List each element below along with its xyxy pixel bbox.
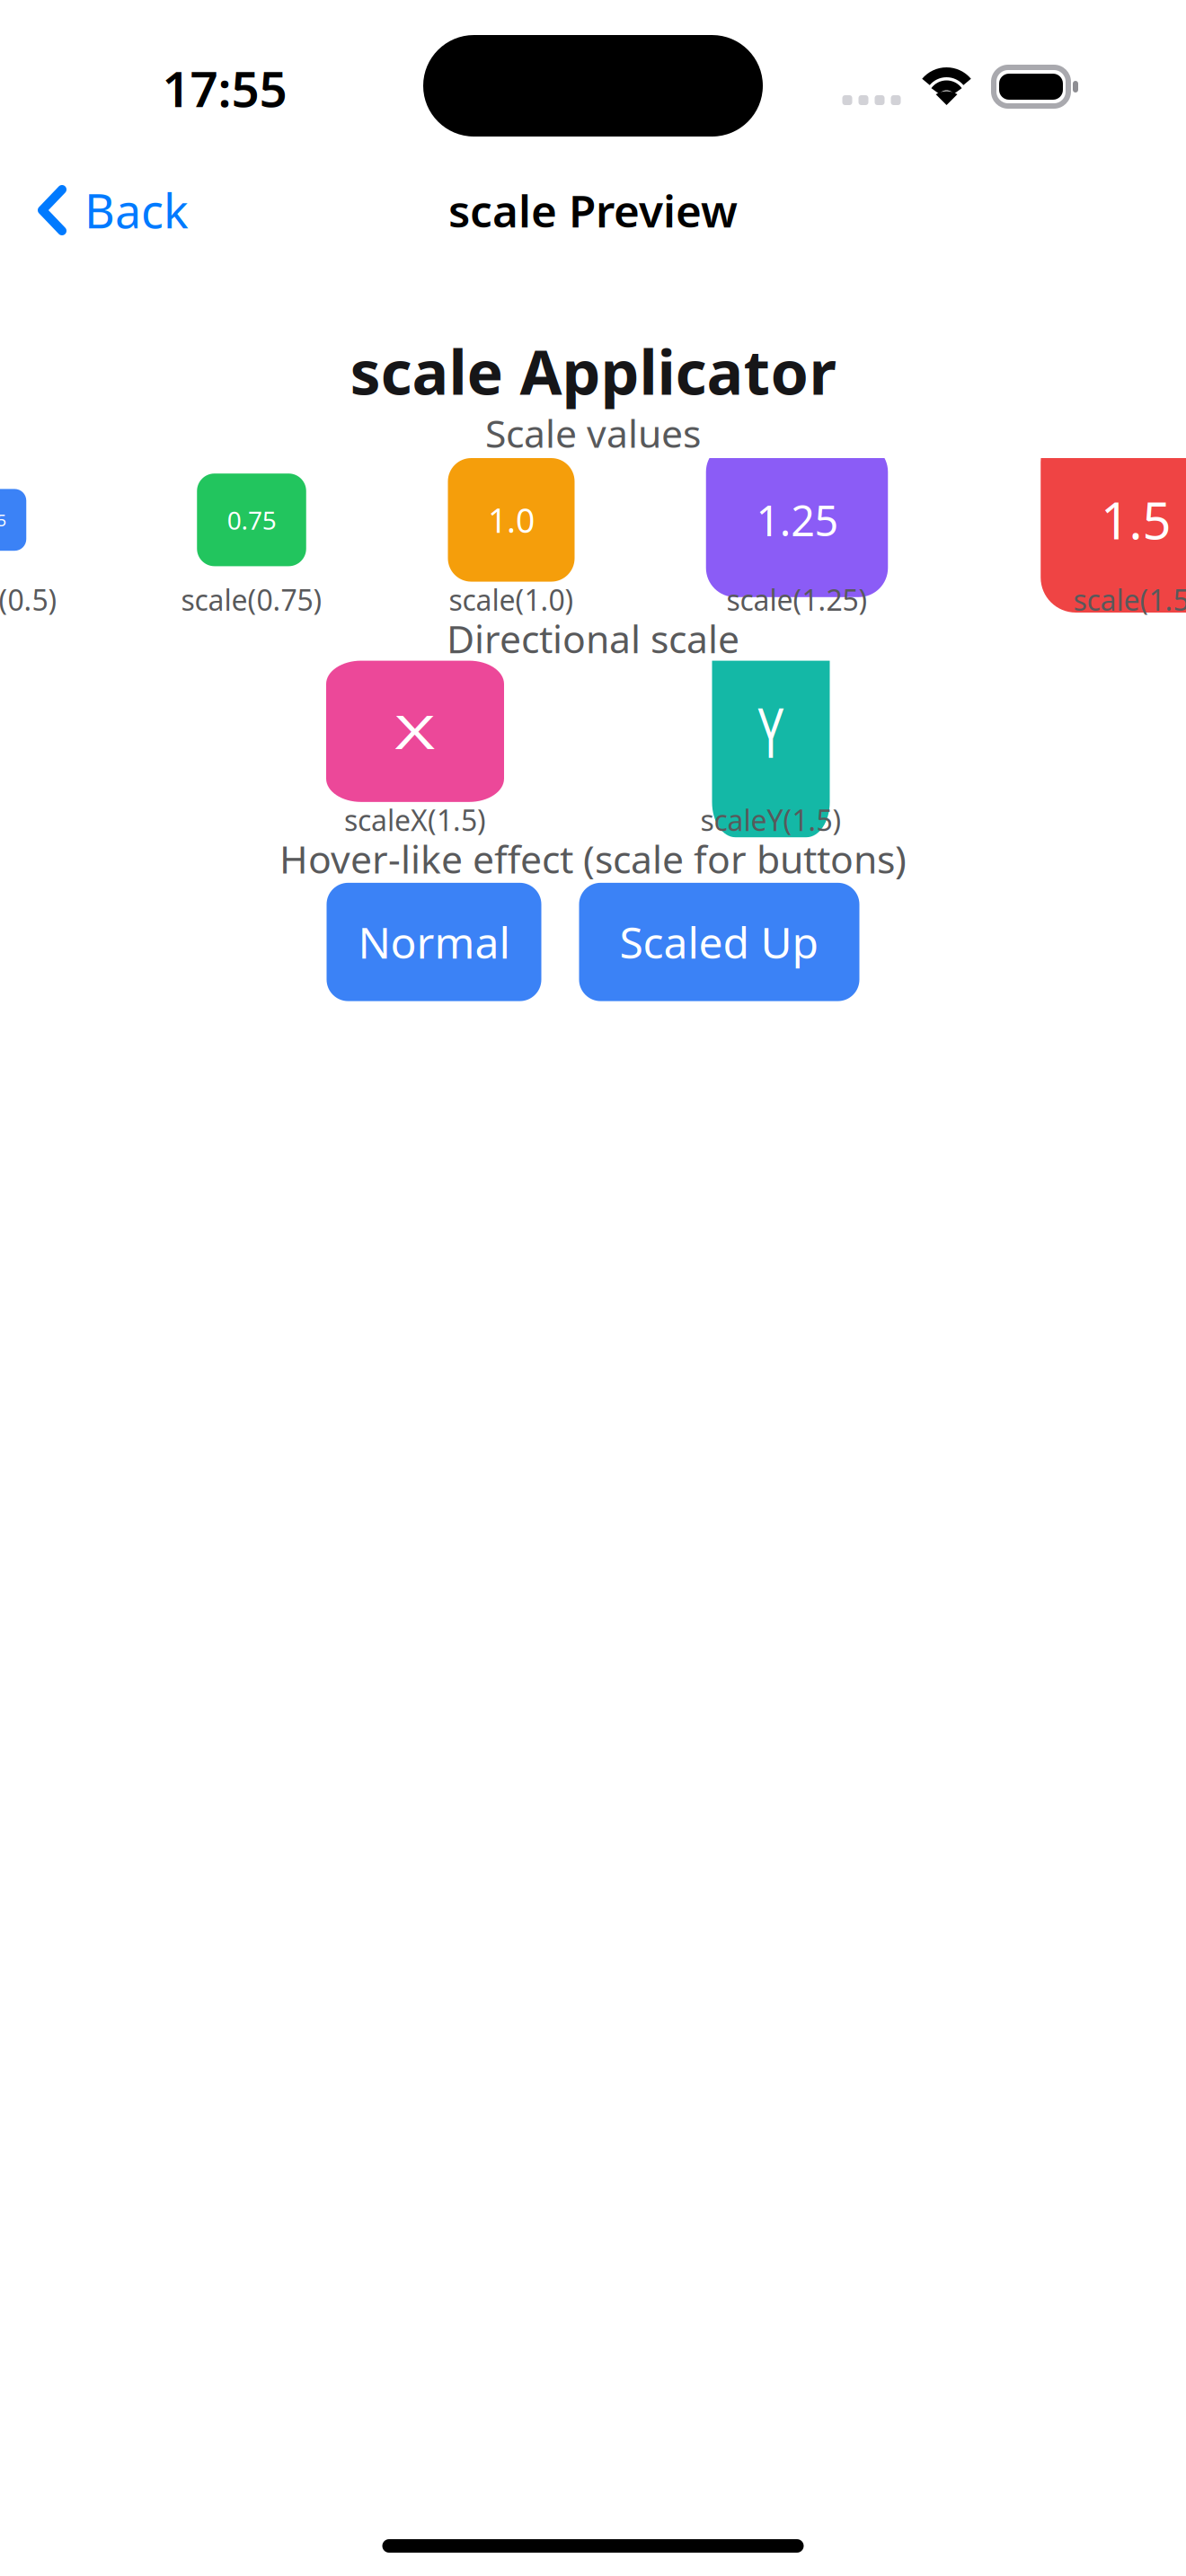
staticText: scale Applicator — [350, 330, 836, 411]
staticText: Normal — [358, 913, 510, 971]
staticText: 1.5 — [1112, 498, 1159, 542]
button[interactable]: Normal — [327, 883, 541, 1001]
staticText: scale(1.25) — [726, 580, 867, 619]
staticText: scaleX(1.5) — [344, 801, 486, 839]
staticText: Y — [758, 701, 784, 762]
staticText: scale(0.75) — [181, 580, 322, 619]
staticText: Scale values — [485, 408, 701, 458]
button[interactable]: Scaled Up — [579, 883, 859, 1001]
staticText: 0.5 — [0, 498, 18, 542]
staticText: scale Preview — [448, 181, 738, 240]
button[interactable]: Back — [0, 135, 210, 286]
staticText: 0.75 — [219, 498, 284, 542]
staticText: 1.0 — [488, 498, 535, 542]
staticText: Directional scale — [447, 613, 739, 664]
staticText: scale(1.5) — [1073, 580, 1186, 619]
staticText: Scaled Up — [620, 913, 819, 971]
staticText: scale(1.0) — [449, 580, 574, 619]
staticText: X — [402, 701, 429, 762]
staticText: scaleY(1.5) — [700, 801, 841, 839]
staticText: Hover-like effect (scale for buttons) — [279, 833, 907, 884]
staticText: Back — [84, 179, 189, 241]
staticText: 1.25 — [764, 498, 830, 542]
staticText: scale(0.5) — [0, 580, 57, 619]
staticText: 17:55 — [162, 55, 287, 121]
